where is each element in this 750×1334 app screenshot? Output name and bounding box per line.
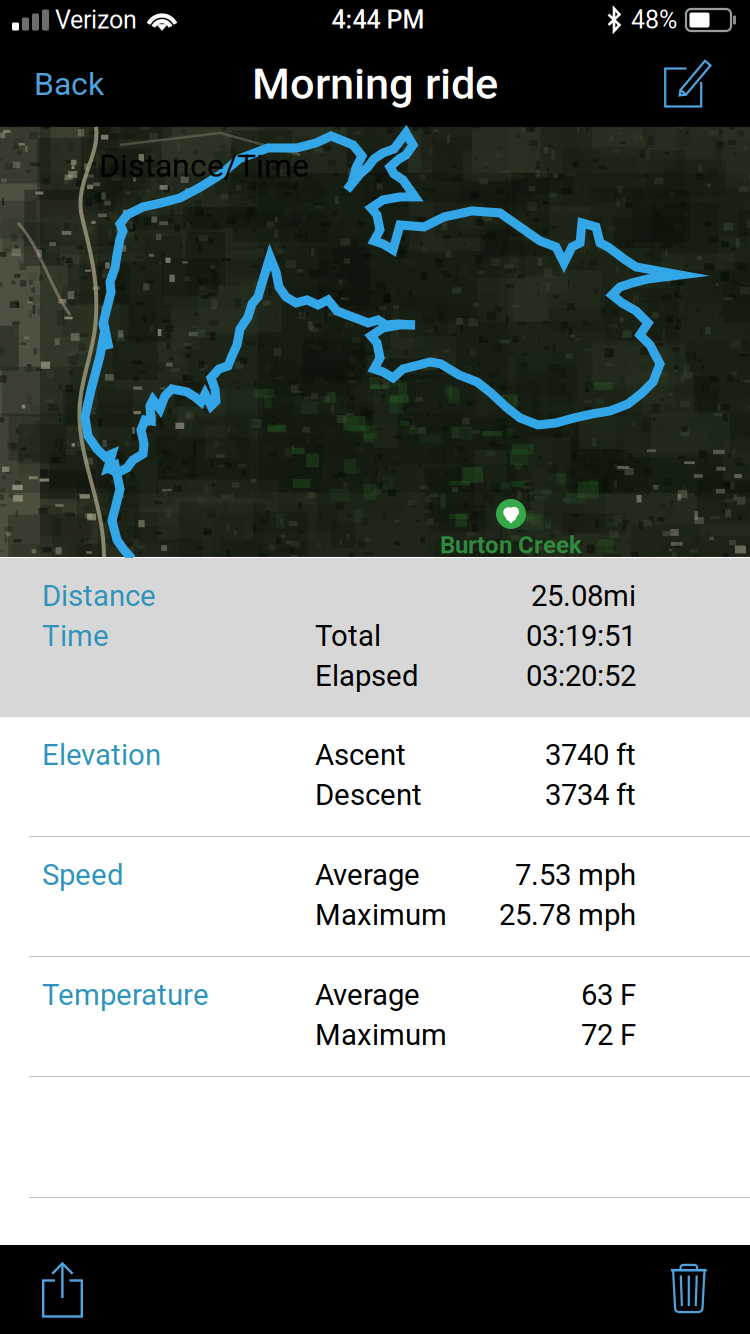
staticText: Maximum [315,898,447,932]
button[interactable]: Speed [0,837,750,956]
staticText: Average [315,858,420,892]
staticText: Total [315,619,381,653]
staticText: 25.08mi [531,579,636,613]
staticText: 4:44 PM [331,5,424,35]
button[interactable]: Temperature [0,957,750,1076]
staticText: 3740 ft [545,738,636,772]
staticText: Average [315,978,420,1012]
staticText: Speed [42,858,124,892]
staticText: 3734 ft [545,778,636,812]
staticText: Verizon [55,5,137,35]
staticText: Descent [315,778,422,812]
staticText: Elevation [42,738,161,772]
staticText: Temperature [42,978,209,1012]
staticText: 63 F [581,978,636,1012]
button[interactable]: Share [0,1245,109,1334]
button[interactable]: Compose [646,40,750,128]
staticText: 72 F [581,1018,636,1052]
staticText: 25.78 mph [499,898,636,932]
staticText: Burton Creek [440,531,582,559]
button[interactable]: Distance [0,558,750,717]
button[interactable]: Delete [644,1245,750,1334]
staticText: Maximum [315,1018,447,1052]
staticText: Elapsed [315,659,419,693]
staticText: Back [34,65,104,103]
staticText: 03:19:51 [526,619,636,653]
staticText: Morning ride [252,59,498,109]
button[interactable]: Back [0,40,122,128]
staticText: Ascent [315,738,406,772]
staticText: Time [42,619,109,653]
staticText: 7.53 mph [515,858,636,892]
staticText: 03:20:52 [526,659,636,693]
staticText: Distance/Time [99,147,309,184]
button[interactable]: Elevation [0,717,750,836]
staticText: Distance [42,579,156,613]
staticText: 48% [631,5,677,35]
